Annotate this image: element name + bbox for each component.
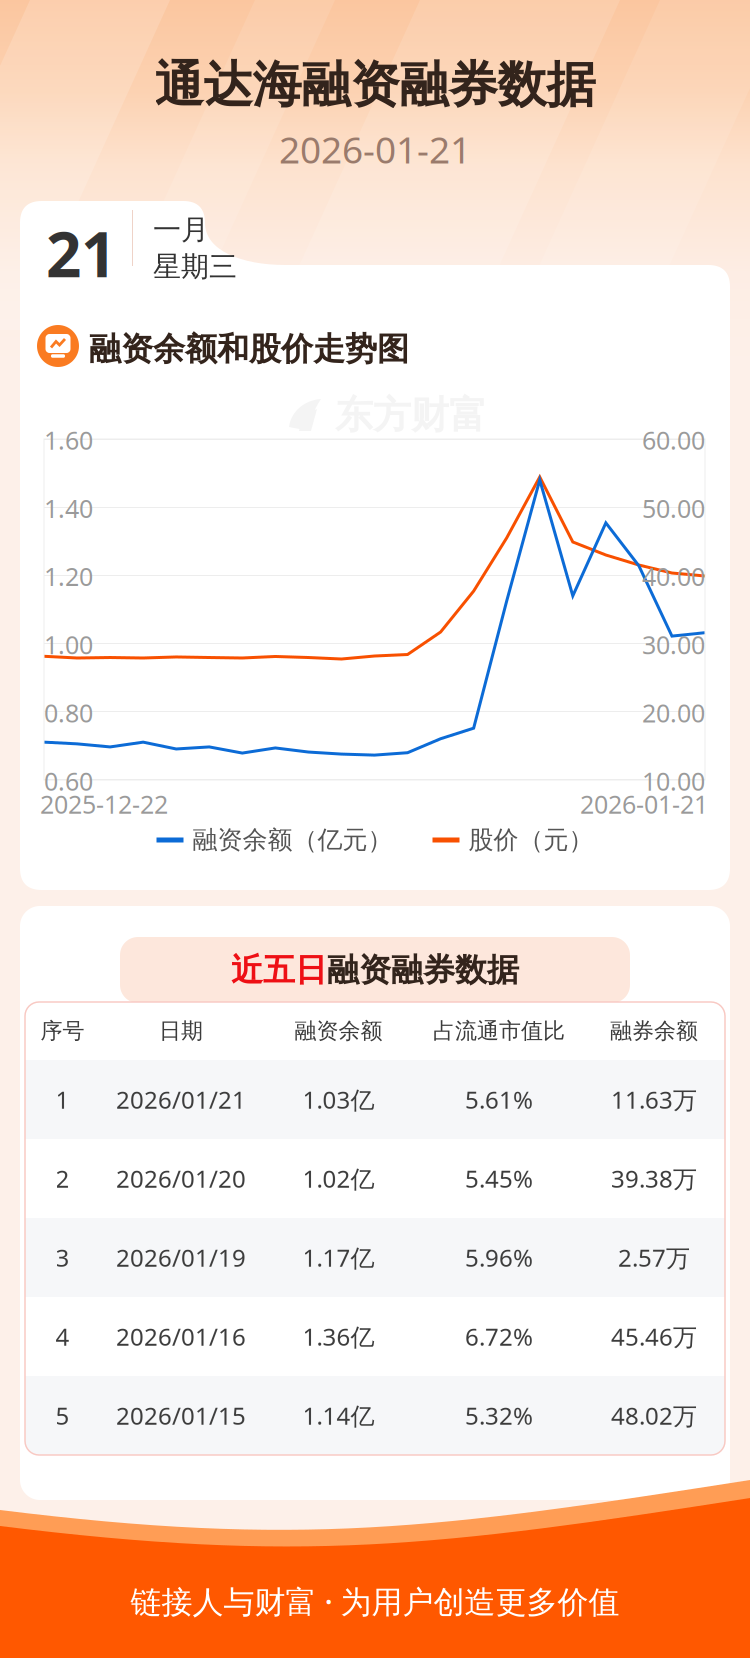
staticText: 2026/01/20 xyxy=(116,1162,246,1195)
staticText: 日期 xyxy=(159,1017,203,1045)
staticText: 一月 xyxy=(153,212,209,247)
staticText: 1.14亿 xyxy=(302,1399,374,1432)
staticText: 30.00 xyxy=(642,628,705,662)
staticText: 1.02亿 xyxy=(302,1162,374,1195)
staticText: 序号 xyxy=(40,1017,84,1045)
staticText: 5 xyxy=(55,1399,69,1432)
staticText: 星期三 xyxy=(153,249,237,284)
staticText: 股价（元） xyxy=(468,824,593,856)
staticText: 10.00 xyxy=(642,764,705,798)
staticText: 1.40 xyxy=(44,491,93,525)
staticText: 5.61% xyxy=(465,1083,533,1116)
staticText: 2.57万 xyxy=(618,1241,690,1274)
staticText: 东方财富 xyxy=(335,391,487,439)
staticText: 1.00 xyxy=(44,628,93,662)
staticText: 1.20 xyxy=(44,559,93,593)
staticText: 2026/01/16 xyxy=(116,1320,246,1353)
staticText: 近五日 xyxy=(231,950,327,990)
staticText: 20.00 xyxy=(642,696,705,730)
staticText: 5.45% xyxy=(465,1162,533,1195)
staticText: 60.00 xyxy=(642,423,705,457)
staticText: 50.00 xyxy=(642,491,705,525)
staticText: 21 xyxy=(46,211,116,295)
staticText: 融资融券数据 xyxy=(327,950,519,990)
staticText: 2026/01/15 xyxy=(116,1399,246,1432)
staticText: 11.63万 xyxy=(611,1083,697,1116)
staticText: 1.17亿 xyxy=(302,1241,374,1274)
staticText: 2026-01-21 xyxy=(580,787,708,821)
staticText: 0.60 xyxy=(44,764,93,798)
staticText: 占流通市值比 xyxy=(433,1017,565,1045)
staticText: 2025-12-22 xyxy=(40,787,168,821)
staticText: 2026/01/19 xyxy=(116,1241,246,1274)
staticText: 1.36亿 xyxy=(302,1320,374,1353)
staticText: 39.38万 xyxy=(611,1162,697,1195)
staticText: 1.60 xyxy=(44,423,93,457)
staticText: 45.46万 xyxy=(611,1320,697,1353)
staticText: 2 xyxy=(55,1162,69,1195)
staticText: 融资余额 xyxy=(294,1017,382,1045)
staticText: 融资余额和股价走势图 xyxy=(89,329,409,369)
staticText: 1 xyxy=(55,1083,69,1116)
staticText: 1.03亿 xyxy=(302,1083,374,1116)
staticText: 5.32% xyxy=(465,1399,533,1432)
staticText: 6.72% xyxy=(465,1320,533,1353)
staticText: 4 xyxy=(55,1320,69,1353)
staticText: 5.96% xyxy=(465,1241,533,1274)
staticText: 40.00 xyxy=(642,559,705,593)
staticText: 融券余额 xyxy=(610,1017,698,1045)
staticText: 链接人与财富 · 为用户创造更多价值 xyxy=(130,1580,619,1622)
staticText: 48.02万 xyxy=(611,1399,697,1432)
staticText: 融资余额（亿元） xyxy=(192,824,392,856)
staticText: 通达海融资融券数据 xyxy=(154,54,595,116)
staticText: 0.80 xyxy=(44,696,93,730)
staticText: 2026-01-21 xyxy=(279,124,471,174)
staticText: 3 xyxy=(55,1241,69,1274)
staticText: 2026/01/21 xyxy=(116,1083,246,1116)
